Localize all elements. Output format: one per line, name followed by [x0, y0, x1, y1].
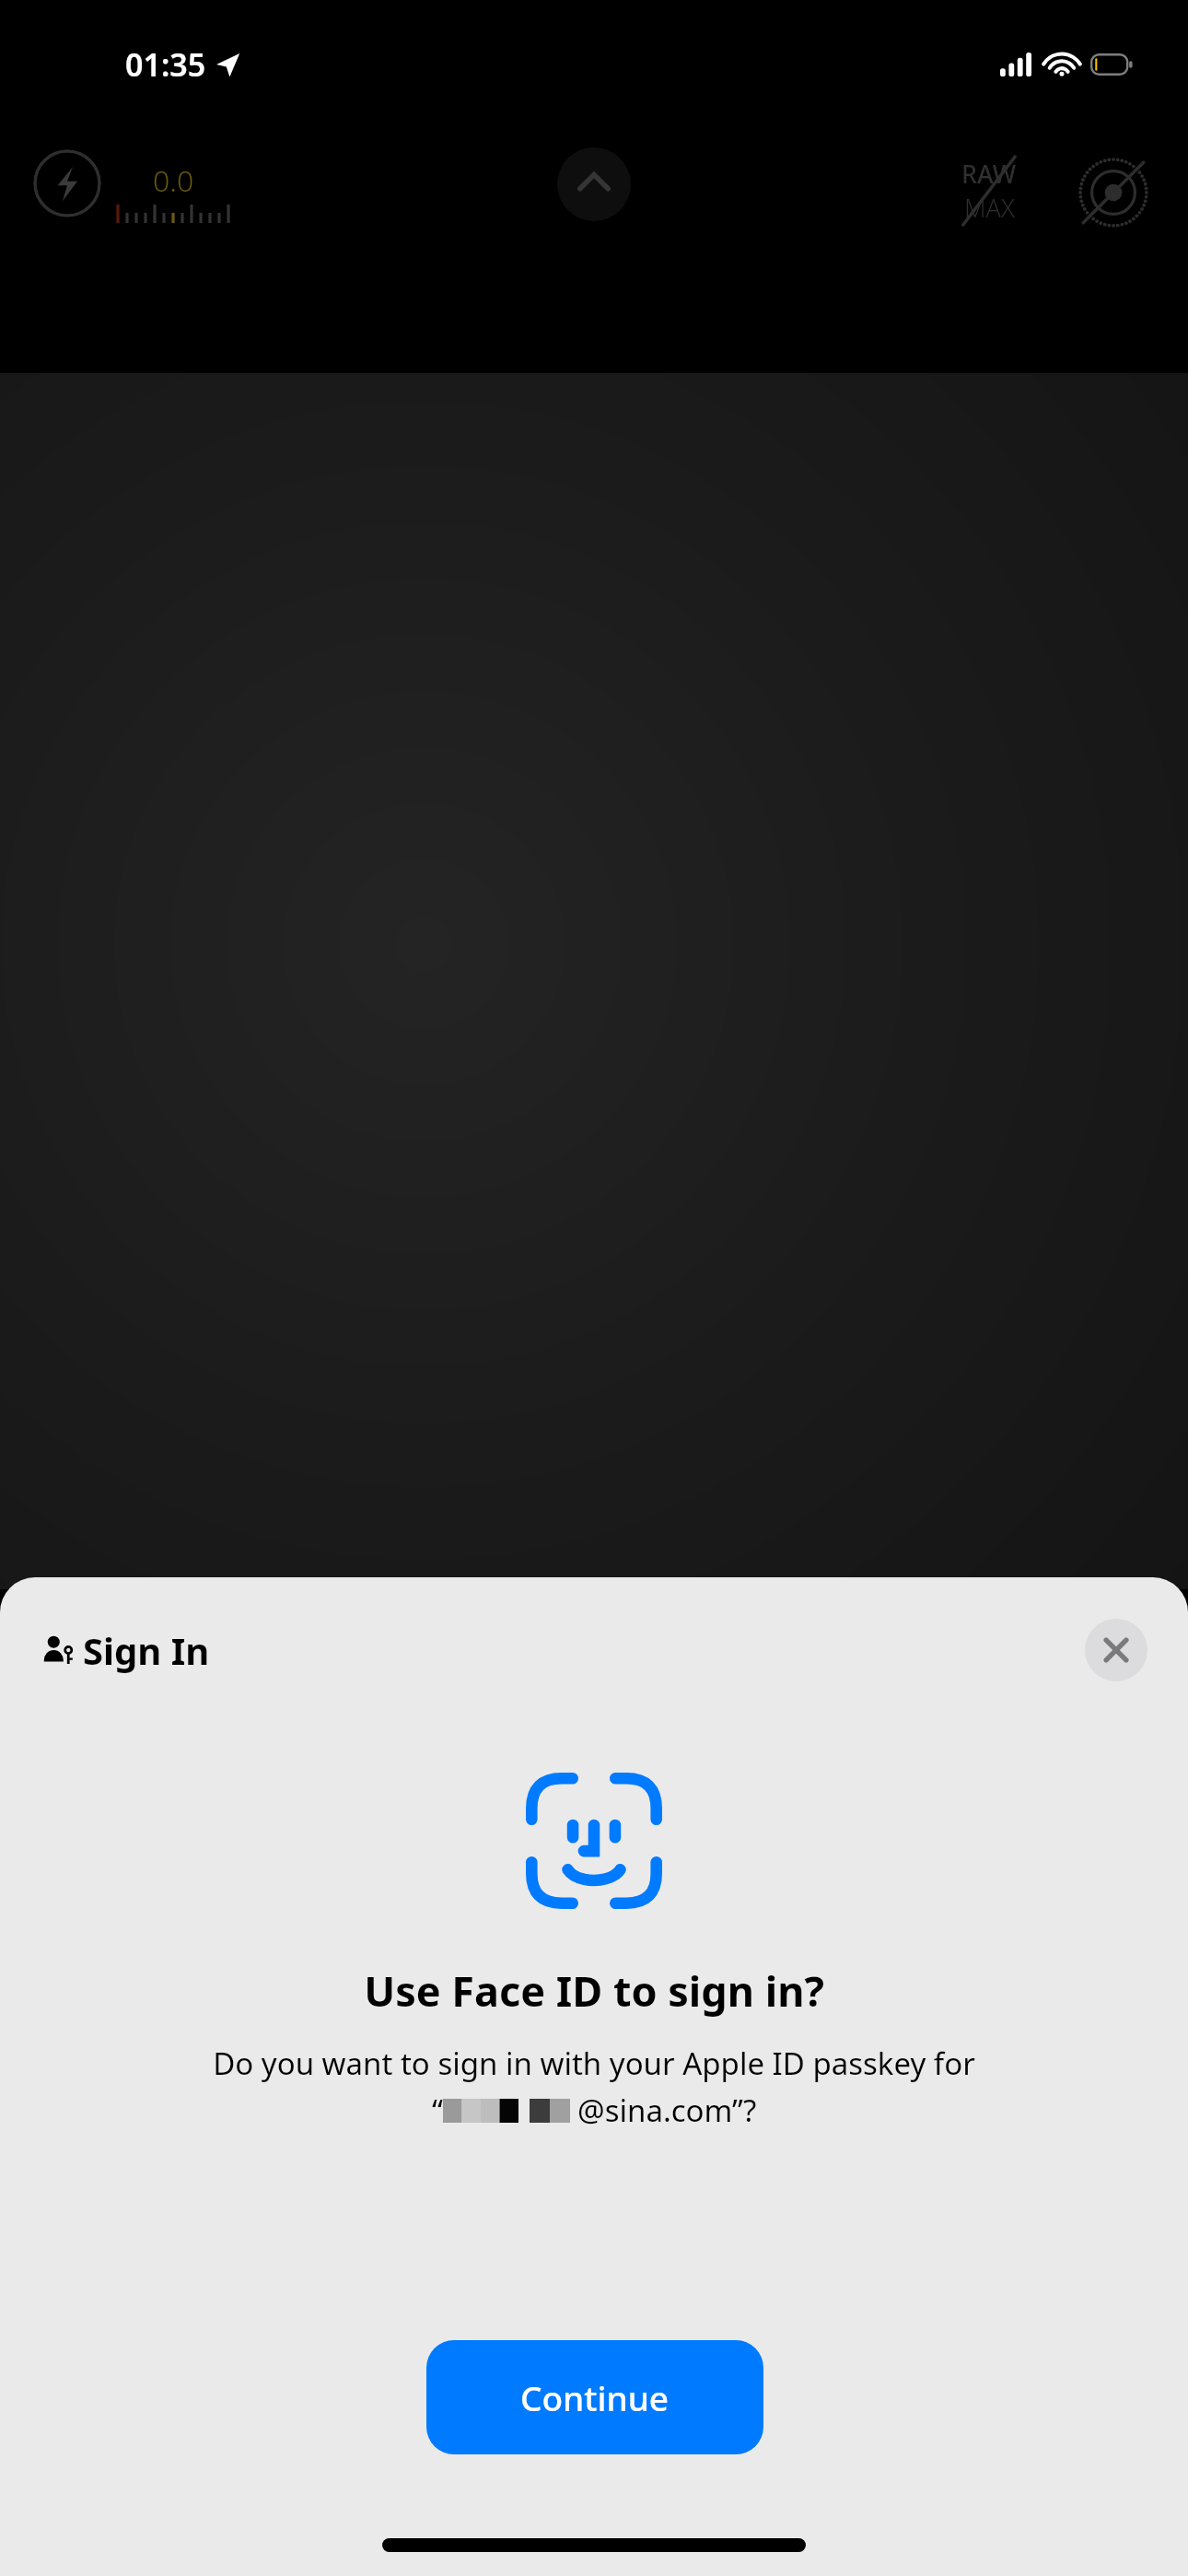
- staticText: Use Face ID to sign in?: [364, 1962, 824, 2019]
- button[interactable]: Close: [1085, 1619, 1147, 1681]
- button[interactable]: More camera options: [557, 147, 631, 221]
- staticText: MAX: [964, 191, 1015, 225]
- button[interactable]: RAW Max off: [961, 157, 1017, 225]
- staticText: 01:35: [125, 43, 206, 86]
- staticText: Do you want to sign in with your Apple I…: [213, 2043, 975, 2084]
- staticText: @sina.com”?: [577, 2090, 757, 2131]
- staticText: 0.0: [153, 160, 194, 201]
- staticText: Sign In: [83, 1625, 210, 1675]
- staticText: RAW: [961, 157, 1017, 191]
- button[interactable]: Sign In: [41, 1625, 210, 1675]
- button[interactable]: Flash: [33, 149, 101, 217]
- staticText: Continue: [520, 2374, 670, 2420]
- button[interactable]: Continue: [426, 2340, 763, 2454]
- staticText: “: [432, 2090, 443, 2131]
- button[interactable]: Live Photo off: [1077, 157, 1149, 228]
